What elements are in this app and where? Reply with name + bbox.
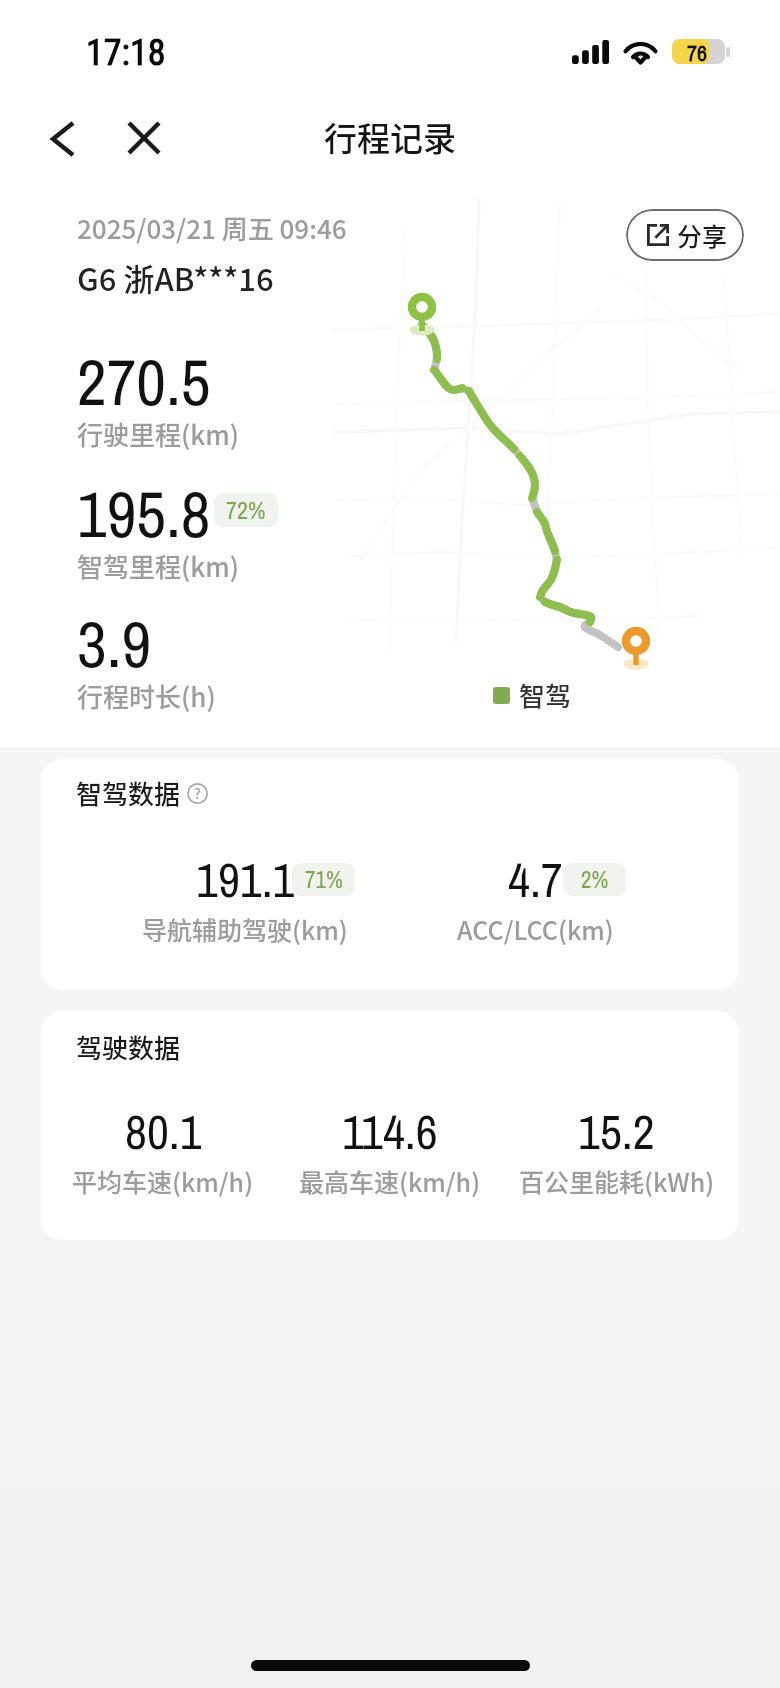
staticText: ? bbox=[194, 783, 201, 803]
staticText: 行程时长(h) bbox=[77, 677, 216, 715]
button[interactable]: 智驾数据 bbox=[76, 774, 208, 812]
staticText: 行程记录 bbox=[324, 113, 456, 161]
other: Info bbox=[187, 783, 208, 804]
staticText: 百公里能耗(kWh) bbox=[519, 1163, 715, 1199]
staticText: 76 bbox=[687, 38, 708, 63]
staticText: 15.2 bbox=[578, 1099, 655, 1164]
staticText: ACC/LCC(km) bbox=[457, 911, 614, 947]
staticText: 驾驶数据 bbox=[76, 1028, 181, 1066]
staticText: 191.1 bbox=[196, 847, 295, 912]
staticText: 71% bbox=[305, 864, 343, 895]
staticText: 智驾里程(km) bbox=[77, 547, 239, 585]
staticText: 导航辅助驾驶(km) bbox=[142, 911, 348, 947]
button[interactable]: Back bbox=[34, 110, 92, 168]
staticText: 最高车速(km/h) bbox=[299, 1163, 481, 1199]
staticText: 80.1 bbox=[125, 1099, 202, 1164]
staticText: 智驾 bbox=[519, 676, 572, 714]
staticText: 智驾数据 bbox=[76, 774, 181, 812]
staticText: 114.6 bbox=[342, 1099, 438, 1164]
staticText: 72% bbox=[226, 494, 266, 526]
staticText: 2025/03/21 周五 09:46 bbox=[77, 209, 347, 247]
staticText: 270.5 bbox=[77, 338, 211, 426]
staticText: 3.9 bbox=[77, 600, 152, 688]
button[interactable]: 分享 bbox=[626, 209, 744, 261]
staticText: 4.7 bbox=[508, 847, 563, 912]
button[interactable]: Close bbox=[115, 109, 173, 167]
staticText: 2% bbox=[581, 864, 609, 895]
staticText: 行驶里程(km) bbox=[77, 415, 239, 453]
staticText: 195.8 bbox=[77, 470, 211, 558]
staticText: 平均车速(km/h) bbox=[72, 1163, 254, 1199]
staticText: 17:18 bbox=[86, 32, 166, 74]
staticText: 分享 bbox=[677, 217, 728, 253]
staticText: G6 浙AB***16 bbox=[77, 255, 274, 300]
